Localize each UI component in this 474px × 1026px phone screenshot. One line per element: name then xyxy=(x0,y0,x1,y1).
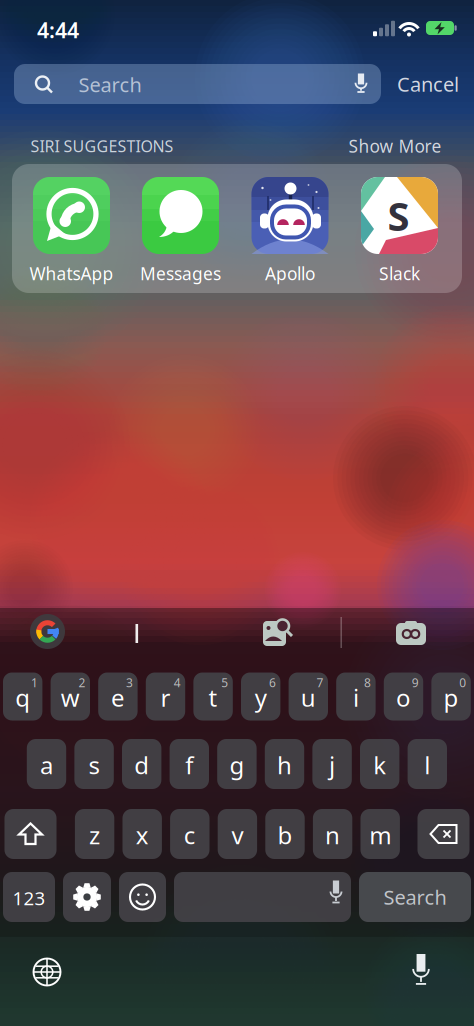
staticText: t xyxy=(209,682,218,713)
button[interactable]: v xyxy=(218,809,257,859)
button[interactable]: u xyxy=(289,672,328,720)
staticText: 4:44 xyxy=(37,16,79,44)
button[interactable]: e xyxy=(98,672,138,720)
button[interactable]: Google xyxy=(30,614,65,649)
staticText: f xyxy=(185,749,193,781)
button[interactable]: t xyxy=(193,672,233,720)
staticText: n xyxy=(325,819,340,851)
button[interactable]: Search xyxy=(359,872,471,922)
staticText: SIRI SUGGESTIONS xyxy=(30,135,173,157)
button[interactable]: f xyxy=(170,739,209,789)
button[interactable]: Messages xyxy=(126,175,234,287)
staticText: c xyxy=(184,819,196,851)
staticText: 4 xyxy=(174,674,181,690)
button[interactable]: Image search xyxy=(257,612,297,652)
staticText: 9 xyxy=(412,674,419,690)
staticText: 5 xyxy=(221,674,228,690)
staticText: 7 xyxy=(316,674,323,690)
staticText: d xyxy=(134,749,149,781)
button[interactable]: i xyxy=(336,672,376,720)
button[interactable]: n xyxy=(313,809,352,859)
staticText: 0 xyxy=(459,674,466,690)
button[interactable]: Camera xyxy=(391,612,431,652)
button[interactable]: h xyxy=(265,739,304,789)
staticText: p xyxy=(444,682,459,713)
button[interactable]: r xyxy=(146,672,185,720)
button[interactable]: b xyxy=(265,809,305,859)
staticText: q xyxy=(15,682,30,713)
button[interactable]: m xyxy=(360,809,400,859)
button[interactable]: l xyxy=(408,739,447,789)
staticText: v xyxy=(231,819,243,851)
staticText: Search xyxy=(78,71,141,98)
button[interactable]: q xyxy=(3,672,42,720)
button[interactable]: Emoji xyxy=(119,872,166,922)
button[interactable]: Dictation xyxy=(399,949,443,993)
staticText: y xyxy=(255,682,267,713)
button[interactable]: w xyxy=(51,672,90,720)
staticText: j xyxy=(329,749,335,781)
button[interactable]: Next keyboard xyxy=(25,950,69,994)
button[interactable]: c xyxy=(170,809,209,859)
staticText: i xyxy=(353,682,359,713)
staticText: 6 xyxy=(269,674,276,690)
button[interactable]: WhatsApp xyxy=(17,175,125,287)
staticText: w xyxy=(61,682,80,713)
staticText: a xyxy=(40,749,53,781)
staticText: WhatsApp xyxy=(29,262,113,285)
staticText: l xyxy=(424,749,430,781)
staticText: S xyxy=(387,189,409,242)
button[interactable]: S xyxy=(345,175,453,287)
button[interactable]: k xyxy=(360,739,399,789)
staticText: 123 xyxy=(12,886,45,910)
button[interactable]: x xyxy=(122,809,162,859)
button[interactable]: Settings xyxy=(63,872,111,922)
button[interactable]: Cancel xyxy=(382,64,474,104)
staticText: r xyxy=(160,682,170,713)
staticText: 2 xyxy=(78,674,85,690)
button[interactable]: p xyxy=(431,672,471,720)
button[interactable]: g xyxy=(217,739,257,789)
staticText: h xyxy=(277,749,292,781)
button[interactable]: j xyxy=(312,739,352,789)
staticText: Search xyxy=(383,884,446,910)
staticText: 3 xyxy=(126,674,133,690)
staticText: e xyxy=(111,682,125,713)
staticText: Messages xyxy=(140,262,221,285)
staticText: Cancel xyxy=(397,71,459,97)
staticText: 1 xyxy=(31,674,38,690)
staticText: b xyxy=(277,819,292,851)
staticText: g xyxy=(229,749,244,781)
staticText: z xyxy=(89,819,100,851)
button[interactable]: Shift xyxy=(4,809,56,859)
button[interactable]: Show More xyxy=(340,133,450,159)
button[interactable]: s xyxy=(74,739,114,789)
staticText: Show More xyxy=(348,134,441,157)
button[interactable]: Space xyxy=(174,872,351,922)
button[interactable]: Search xyxy=(14,64,381,104)
button[interactable]: z xyxy=(75,809,114,859)
staticText: Slack xyxy=(379,262,420,285)
staticText: x xyxy=(136,819,149,851)
staticText: o xyxy=(396,682,411,713)
button[interactable]: y xyxy=(241,672,280,720)
button[interactable]: o xyxy=(384,672,423,720)
button[interactable]: 123 xyxy=(3,872,55,922)
button[interactable]: Apollo xyxy=(236,175,344,287)
button[interactable]: a xyxy=(27,739,66,789)
button[interactable]: Delete xyxy=(417,809,469,859)
button[interactable]: d xyxy=(122,739,161,789)
staticText: 8 xyxy=(364,674,371,690)
staticText: m xyxy=(369,819,391,851)
staticText: s xyxy=(89,749,100,781)
staticText: k xyxy=(373,749,386,781)
staticText: Apollo xyxy=(265,262,315,285)
staticText: u xyxy=(301,682,316,713)
